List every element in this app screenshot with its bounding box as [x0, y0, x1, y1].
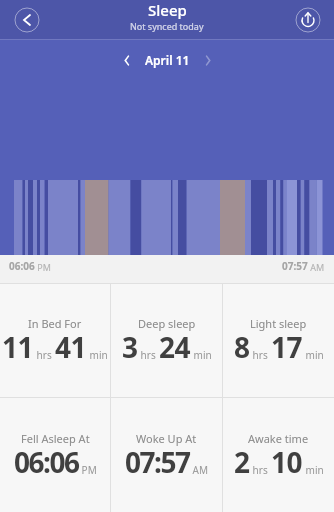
button[interactable]	[198, 50, 218, 70]
staticText: hrs	[34, 348, 55, 362]
staticText: Awake time	[248, 431, 309, 446]
staticText: 06:06	[14, 443, 79, 481]
button[interactable]: Woke Up At	[111, 398, 222, 512]
staticText: min	[87, 348, 108, 362]
staticText: min	[191, 348, 212, 362]
staticText: Woke Up At	[136, 431, 197, 446]
staticText: min	[303, 348, 324, 362]
staticText: Sleep	[148, 0, 187, 20]
button[interactable]	[14, 7, 40, 33]
staticText: 10	[271, 443, 303, 481]
staticText: PM	[79, 463, 97, 477]
staticText: hrs	[138, 348, 159, 362]
staticText: hrs	[250, 463, 271, 477]
staticText: 24	[159, 328, 191, 366]
staticText: 11	[2, 328, 34, 366]
staticText: 3	[122, 328, 138, 366]
staticText: Light sleep	[250, 316, 307, 331]
button[interactable]: Light sleep	[223, 284, 334, 397]
staticText: AM	[190, 463, 209, 477]
staticText: 41	[55, 328, 87, 366]
staticText: 07:57	[282, 259, 308, 273]
staticText: min	[303, 463, 324, 477]
button[interactable]: Fell Asleep At	[0, 398, 110, 512]
staticText: In Bed For	[28, 316, 82, 331]
staticText: Fell Asleep At	[21, 431, 90, 446]
staticText: 17	[271, 328, 303, 366]
button[interactable]	[117, 50, 137, 70]
staticText: hrs	[250, 348, 271, 362]
button[interactable]: Deep sleep	[111, 284, 222, 397]
staticText: Not synced today	[130, 20, 204, 32]
button[interactable]	[295, 7, 321, 33]
button[interactable]: Awake time	[223, 398, 334, 512]
staticText: AM	[308, 261, 325, 273]
staticText: April 11	[145, 52, 190, 68]
staticText: 06:06	[9, 259, 35, 273]
staticText: PM	[35, 261, 51, 273]
staticText: 07:57	[125, 443, 190, 481]
staticText: 8	[234, 328, 250, 366]
button[interactable]: In Bed For	[0, 284, 110, 397]
staticText: 2	[234, 443, 250, 481]
staticText: Deep sleep	[138, 316, 196, 331]
